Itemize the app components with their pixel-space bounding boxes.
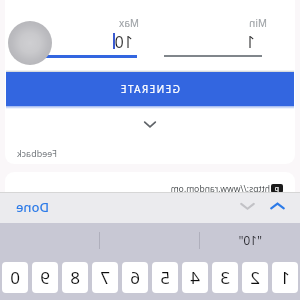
staticText: 4: [190, 266, 200, 289]
button[interactable]: 5: [152, 262, 178, 293]
staticText: 2: [250, 266, 260, 289]
button[interactable]: GENERATE: [6, 72, 294, 106]
button[interactable]: 0: [2, 262, 28, 293]
staticText: https://www.random.om: [170, 183, 270, 195]
staticText: 3: [220, 266, 230, 289]
staticText: "10": [238, 232, 262, 248]
staticText: Min: [249, 16, 267, 30]
button[interactable]: 7: [92, 262, 118, 293]
button[interactable]: 3: [212, 262, 238, 293]
button[interactable]: 4: [182, 262, 208, 293]
button[interactable]: Next field: [238, 196, 258, 216]
button[interactable]: 1: [272, 262, 298, 293]
staticText: Feedback: [16, 147, 57, 159]
staticText: GENERATE: [119, 82, 180, 96]
button[interactable]: Previous field: [268, 196, 288, 216]
staticText: 9: [40, 266, 50, 289]
staticText: Max: [119, 16, 139, 30]
staticText: p: [274, 184, 279, 193]
button[interactable]: "10": [200, 223, 300, 256]
button[interactable]: 2: [242, 262, 268, 293]
button[interactable]: Done: [11, 196, 53, 218]
staticText: 7: [100, 266, 110, 289]
staticText: 8: [70, 266, 80, 289]
button[interactable]: 8: [62, 262, 88, 293]
staticText: Done: [15, 198, 49, 216]
staticText: 0: [10, 266, 20, 289]
staticText: 1: [245, 31, 255, 53]
staticText: 1: [280, 266, 290, 289]
staticText: 5: [160, 266, 170, 289]
button[interactable]: 9: [32, 262, 58, 293]
button[interactable]: Expand: [139, 113, 161, 135]
staticText: 10: [114, 31, 133, 53]
staticText: 6: [130, 266, 140, 289]
button[interactable]: 6: [122, 262, 148, 293]
